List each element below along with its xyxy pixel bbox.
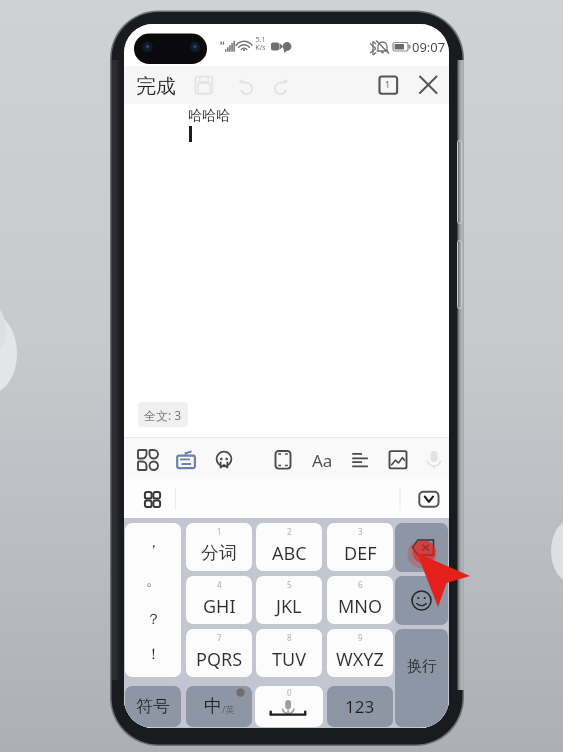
staticText: 中 (204, 695, 222, 718)
staticText: 6 (358, 579, 363, 590)
staticText: 9 (358, 632, 363, 643)
button[interactable]: Font size (306, 444, 338, 476)
staticText: 123 (345, 695, 375, 718)
button[interactable]: Toolbox (136, 483, 168, 515)
staticText: 1 (385, 78, 391, 90)
button[interactable]: 完成 (130, 71, 182, 102)
button[interactable]: Apps (132, 439, 164, 480)
staticText: 符号 (136, 696, 170, 717)
button[interactable] (327, 523, 393, 571)
staticText: 8 (287, 632, 292, 643)
button[interactable] (186, 629, 252, 677)
button[interactable] (395, 576, 448, 625)
staticText: 分词 (201, 542, 237, 565)
staticText: 5 (287, 579, 292, 590)
button[interactable]: 全文: 3 (138, 402, 188, 427)
button[interactable]: Image (382, 439, 414, 480)
staticText: 1 (217, 526, 222, 537)
button[interactable]: Note (267, 439, 299, 480)
button[interactable]: Emoji (208, 439, 240, 480)
button[interactable] (256, 629, 322, 677)
button[interactable] (186, 686, 252, 727)
button[interactable] (125, 523, 181, 677)
staticText: GHI (203, 594, 236, 619)
staticText: ， (146, 533, 161, 552)
staticText: 换行 (407, 657, 437, 676)
staticText: ？ (146, 610, 161, 629)
staticText: 2 (287, 526, 292, 537)
staticText: JKL (276, 594, 302, 619)
button[interactable] (395, 523, 448, 572)
staticText: 09:07 (412, 38, 446, 56)
button[interactable] (256, 523, 322, 571)
button[interactable] (327, 686, 393, 727)
staticText: 3 (358, 526, 363, 537)
staticText: 全文: 3 (144, 407, 182, 423)
button[interactable]: Save (192, 72, 220, 100)
staticText: ABC (272, 541, 307, 566)
staticText: 完成 (136, 74, 176, 99)
staticText: PQRS (196, 647, 243, 672)
staticText: /英 (222, 703, 235, 715)
button[interactable]: Voice (418, 439, 449, 480)
button[interactable]: Windows (374, 72, 402, 100)
staticText: 7 (217, 632, 222, 643)
button[interactable] (255, 686, 323, 727)
staticText: WXYZ (336, 647, 384, 672)
staticText: 4 (217, 579, 222, 590)
staticText: TUV (272, 647, 306, 672)
button[interactable] (395, 629, 448, 727)
staticText: 。 (146, 571, 161, 590)
button[interactable]: Undo (231, 72, 259, 100)
button[interactable] (186, 523, 252, 571)
button[interactable]: Hide keyboard (417, 489, 441, 509)
button[interactable]: Close (414, 70, 442, 98)
button[interactable] (256, 576, 322, 624)
staticText: 哈哈哈 (188, 107, 230, 125)
button[interactable] (327, 629, 393, 677)
button[interactable]: Align (344, 439, 376, 480)
button[interactable] (327, 576, 393, 624)
button[interactable]: Card (170, 439, 202, 480)
staticText: ！ (146, 645, 161, 664)
button[interactable]: Redo (268, 72, 296, 100)
staticText: 5.1 K/s (255, 35, 266, 52)
button[interactable] (125, 686, 181, 727)
staticText: DEF (344, 541, 377, 566)
button[interactable] (186, 576, 252, 624)
staticText: MNO (338, 594, 383, 619)
staticText: 0 (287, 687, 292, 698)
staticText: Aa (312, 449, 333, 472)
